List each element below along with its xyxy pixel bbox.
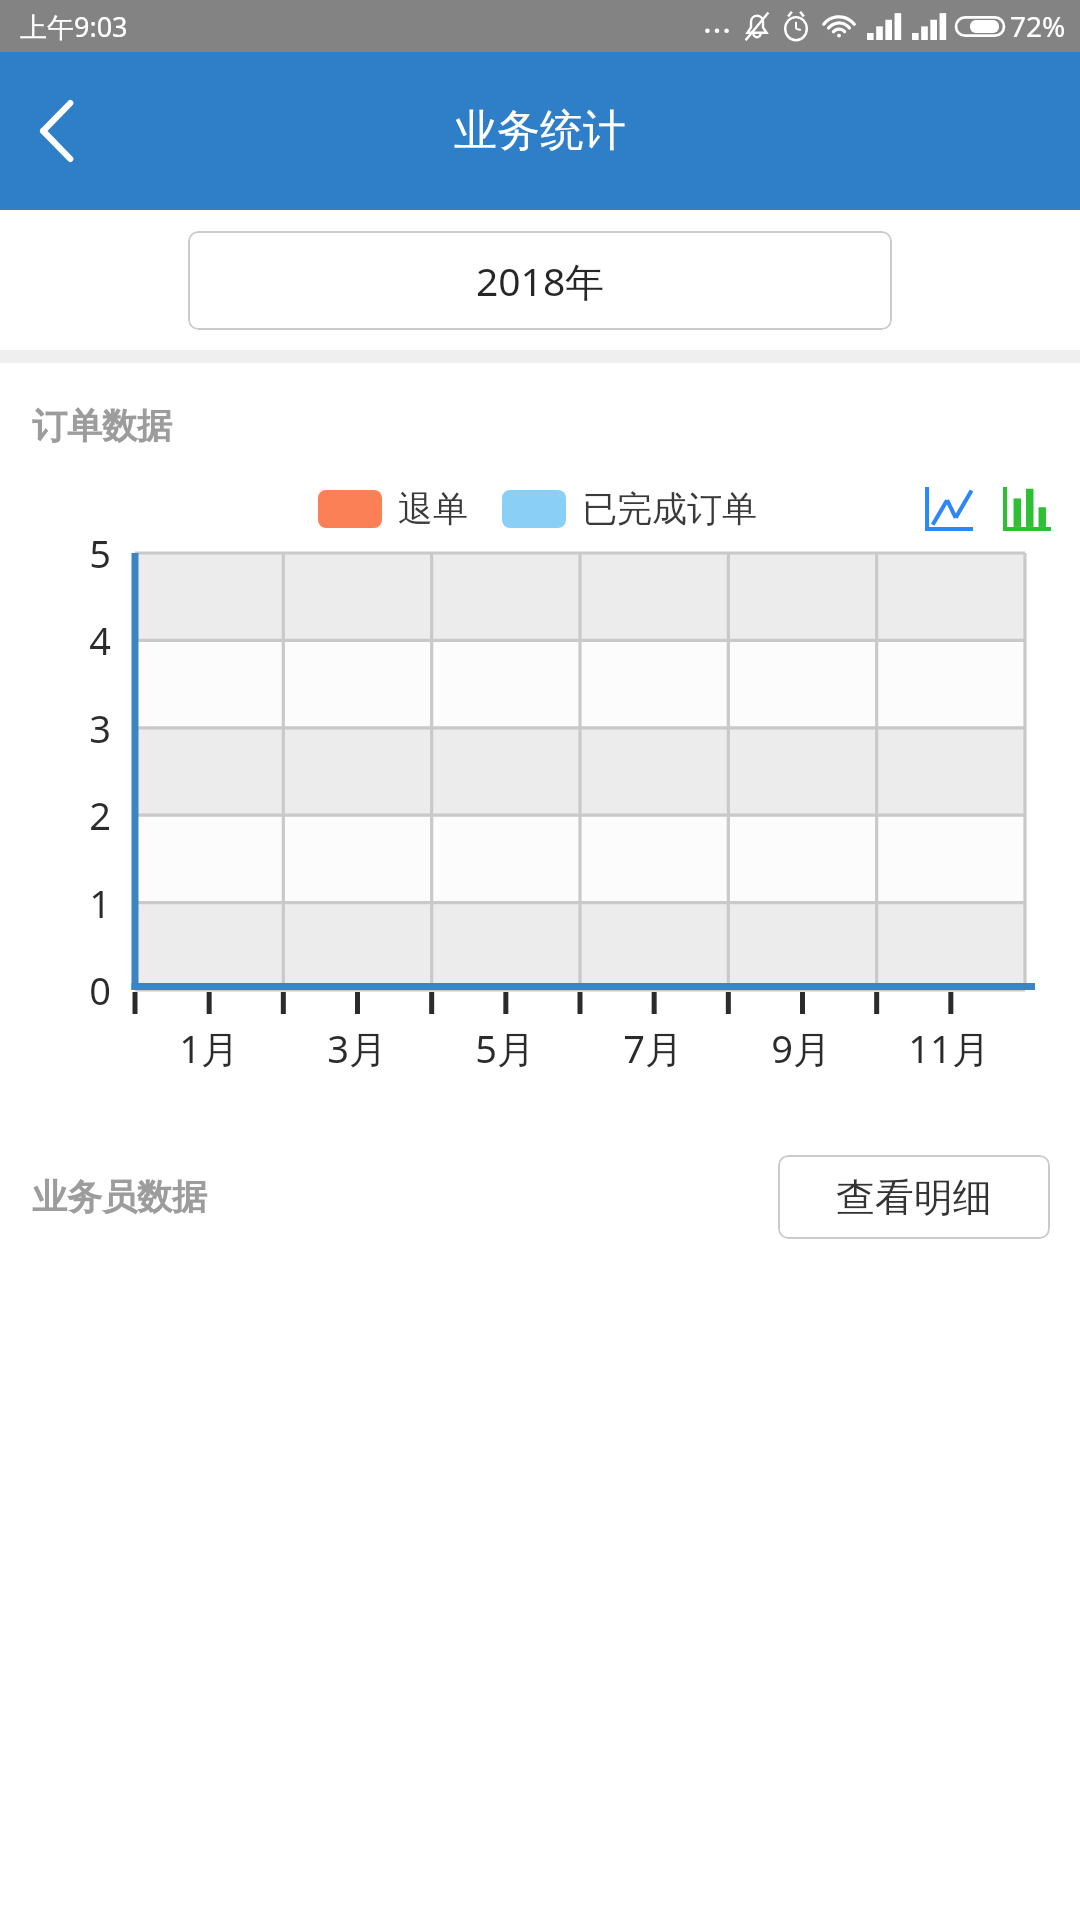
staticText: 7月 bbox=[623, 1022, 683, 1074]
button[interactable]: 查看明细 bbox=[778, 1155, 1050, 1239]
staticText: 5 bbox=[63, 527, 111, 579]
staticText: 9月 bbox=[771, 1022, 831, 1074]
staticText: 72% bbox=[1010, 7, 1066, 45]
staticText: 订单数据 bbox=[32, 404, 172, 448]
button[interactable]: Bar chart view bbox=[998, 480, 1056, 538]
staticText: 退单 bbox=[398, 487, 468, 531]
staticText: 2018年 bbox=[476, 254, 605, 307]
button[interactable]: 2018年 bbox=[188, 231, 892, 330]
staticText: 5月 bbox=[475, 1022, 535, 1074]
staticText: 3月 bbox=[327, 1022, 387, 1074]
staticText: 3 bbox=[63, 702, 111, 754]
staticText: 0 bbox=[63, 964, 111, 1016]
button[interactable]: Back bbox=[8, 83, 104, 179]
staticText: 11月 bbox=[908, 1022, 990, 1074]
staticText: 1 bbox=[63, 877, 111, 929]
staticText: 已完成订单 bbox=[582, 487, 757, 531]
staticText: 查看明细 bbox=[836, 1173, 992, 1222]
staticText: 2 bbox=[63, 789, 111, 841]
button[interactable]: Line chart view bbox=[920, 480, 978, 538]
staticText: 业务统计 bbox=[454, 104, 626, 158]
staticText: 4 bbox=[63, 614, 111, 666]
staticText: 上午9:03 bbox=[20, 8, 128, 45]
staticText: 1月 bbox=[179, 1022, 239, 1074]
staticText: 业务员数据 bbox=[32, 1175, 207, 1219]
